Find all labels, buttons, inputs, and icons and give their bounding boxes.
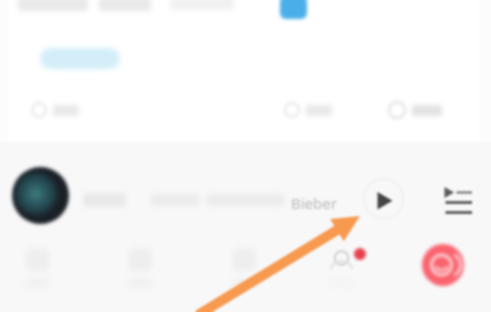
button[interactable]: Playlist [436, 182, 472, 218]
button[interactable] [40, 48, 120, 69]
button[interactable]: Play [363, 178, 404, 219]
button[interactable]: New moment [422, 244, 464, 286]
staticText: Bieber [291, 193, 337, 213]
button[interactable] [283, 101, 332, 119]
button[interactable] [387, 100, 442, 120]
button[interactable] [125, 248, 155, 288]
button[interactable]: Profile [330, 246, 376, 296]
button[interactable] [280, 0, 307, 19]
button[interactable] [30, 101, 79, 119]
button[interactable]: Album art [12, 167, 69, 224]
button[interactable] [22, 248, 52, 288]
button[interactable] [229, 248, 259, 288]
